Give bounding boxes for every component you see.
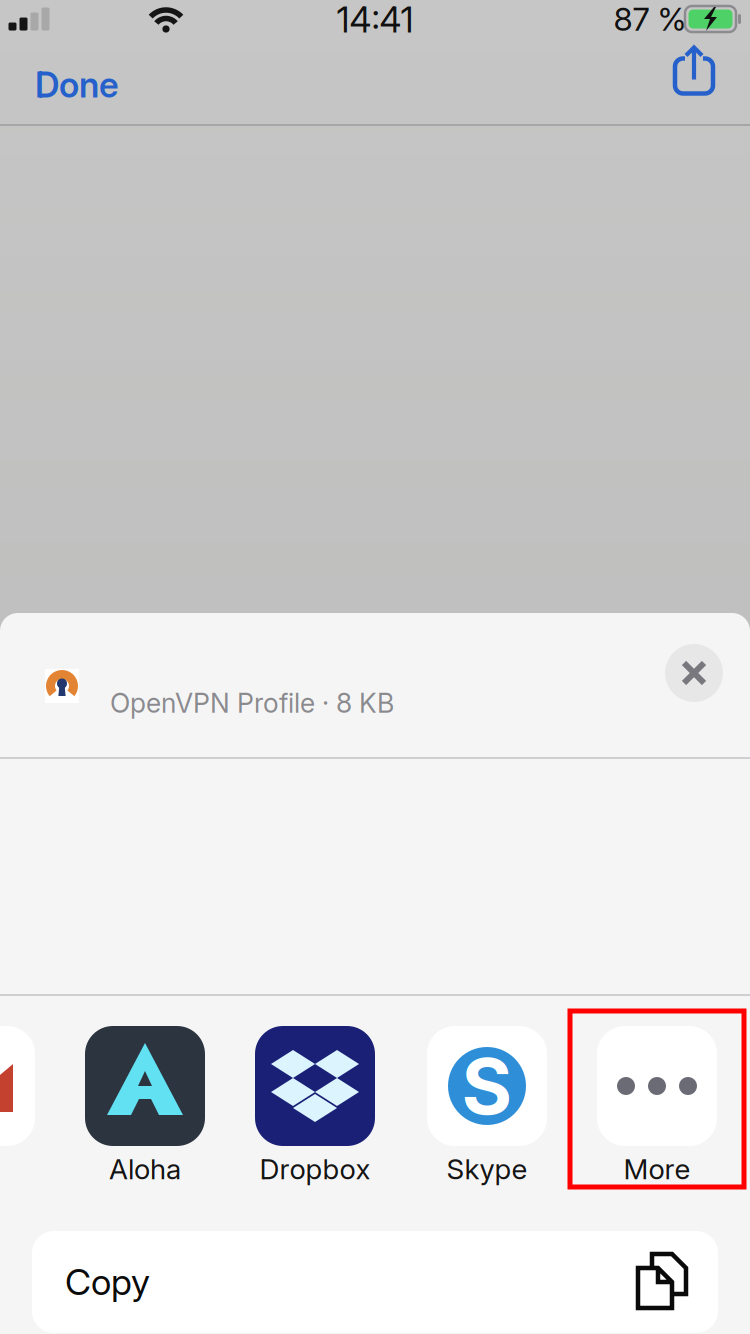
button[interactable]: Remove attachment — [665, 644, 723, 702]
button[interactable]: More — [570, 1026, 744, 1202]
button[interactable]: Gmail — [0, 1026, 35, 1146]
staticText: Dropbox — [259, 1152, 370, 1186]
staticText: S — [461, 1039, 512, 1133]
button[interactable]: Copy — [32, 1231, 718, 1333]
button[interactable]: Share — [646, 31, 742, 111]
staticText: More — [623, 1152, 690, 1186]
button[interactable]: Done — [35, 45, 165, 125]
staticText: Skype — [446, 1152, 527, 1186]
staticText: 14:41 — [336, 0, 413, 41]
staticText: Aloha — [109, 1152, 181, 1186]
staticText: 87 % — [613, 0, 686, 38]
staticText: OpenVPN Profile · 8 KB — [110, 687, 394, 719]
button[interactable]: Aloha — [58, 1026, 232, 1202]
staticText: Done — [35, 64, 119, 106]
button[interactable]: S — [400, 1026, 574, 1202]
button[interactable]: Dropbox — [228, 1026, 402, 1202]
staticText: Copy — [65, 1260, 150, 1304]
